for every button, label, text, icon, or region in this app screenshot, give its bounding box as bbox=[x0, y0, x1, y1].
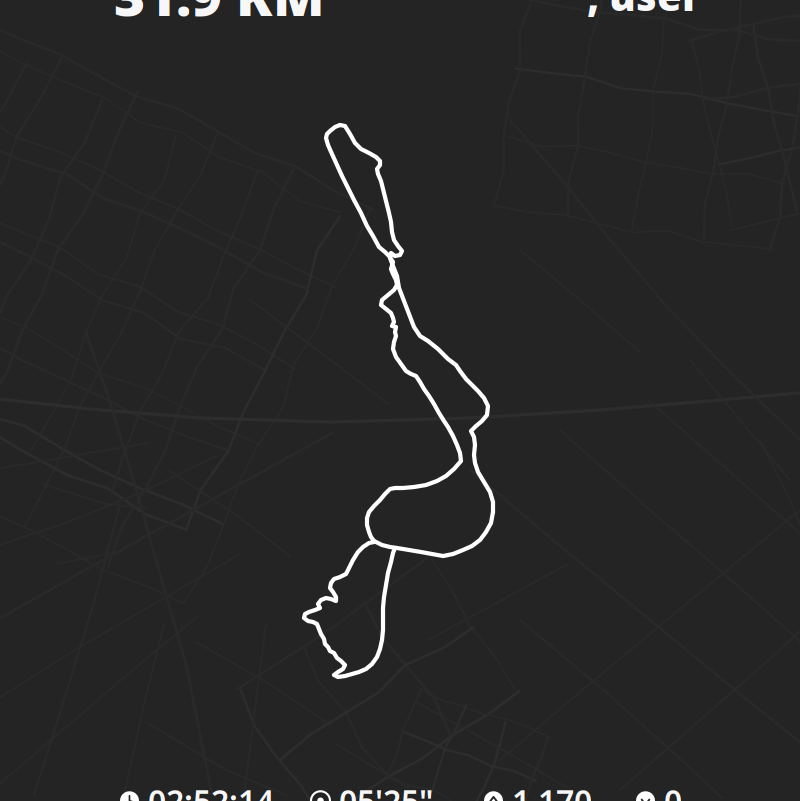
button[interactable]: Average pace bbox=[311, 779, 433, 801]
staticText: 05'25" bbox=[339, 779, 433, 801]
staticText: 02:52:14 bbox=[148, 779, 274, 801]
button[interactable]: Elevation gain bbox=[484, 779, 592, 801]
staticText: 1 170 bbox=[512, 779, 592, 801]
button[interactable]: Elevation loss bbox=[636, 779, 682, 801]
staticText: , user bbox=[587, 0, 701, 22]
button[interactable]: Duration bbox=[120, 779, 274, 801]
staticText: 0 bbox=[664, 779, 682, 801]
staticText: 31.9 KM bbox=[114, 0, 325, 31]
